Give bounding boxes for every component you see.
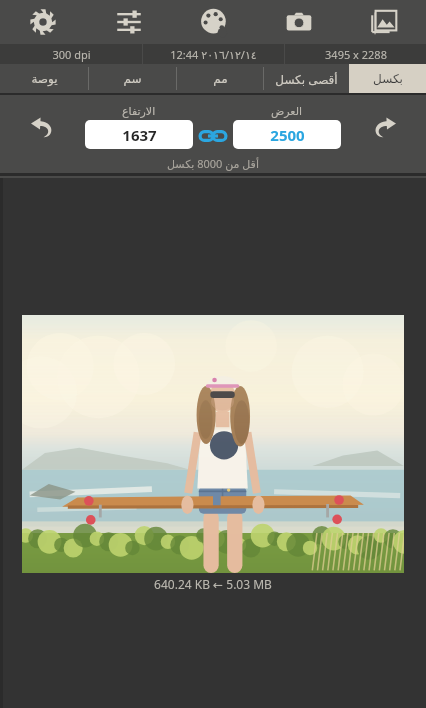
button[interactable]: Link aspect ratio [193,101,233,153]
button[interactable]: Settings [0,0,86,44]
staticText: العرض [271,105,303,118]
staticText: مم [213,72,228,86]
button[interactable]: أقصى بكسل [264,64,349,93]
staticText: أقل من 8000 بكسل [167,156,259,171]
staticText: أقصى بكسل [275,71,338,87]
staticText: 300 dpi [52,47,91,62]
staticText: سم [123,72,142,86]
staticText: 640.24 KB ← 5.03 MB [154,576,272,592]
button[interactable]: يوصة [0,64,88,93]
staticText: 2500 [270,125,305,145]
button[interactable]: بكسل [349,64,426,93]
staticText: يوصة [31,72,58,86]
button[interactable]: Camera [256,0,341,44]
button[interactable]: 1637 [85,120,193,149]
button[interactable]: Effects [171,0,256,44]
button[interactable]: مم [177,64,263,93]
button[interactable]: Adjust [86,0,171,44]
button[interactable]: Redo [341,101,426,153]
staticText: بكسل [373,72,403,86]
staticText: 3495 x 2288 [325,47,387,62]
button[interactable]: Undo [0,101,85,153]
staticText: 1637 [122,125,157,145]
button[interactable]: Gallery [341,0,426,44]
staticText: الارتفاع [122,105,156,118]
button[interactable]: 2500 [233,120,341,149]
staticText: 12:44 ٢٠١٦/١٢/١٤ [170,47,257,62]
button[interactable]: سم [89,64,176,93]
